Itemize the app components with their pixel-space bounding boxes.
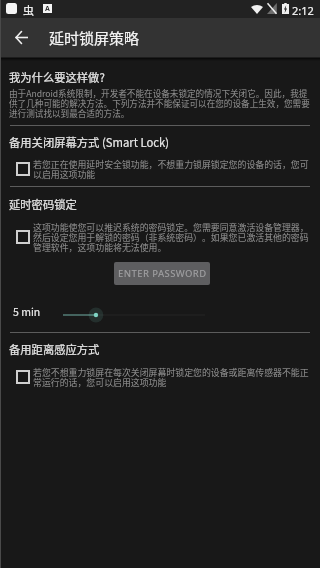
staticText: 2:12 [292, 3, 314, 18]
staticText: 若您正在使用延时安全锁功能，不想重力锁屏锁定您的设备的话，您可以启用这项功能 [33, 158, 312, 180]
button[interactable]: 若您正在使用延时安全锁功能，不想重力锁屏锁定您的设备的话，您可以启用这项功能 [0, 158, 320, 180]
staticText: 延时密码锁定 [9, 196, 77, 212]
staticText: 5 min [13, 304, 41, 319]
button[interactable]: ENTER PASSWORD [114, 262, 210, 285]
staticText: 我为什么要这样做? [9, 69, 105, 85]
staticText: 备用距离感应方式 [9, 341, 100, 357]
button[interactable]: 若您不想重力锁屏在每次关闭屏幕时锁定您的设备或距离传感器不能正常运行的话，您可以… [0, 366, 320, 388]
staticText: 备用关闭屏幕方式 (Smart Lock) [9, 134, 170, 150]
staticText: A [45, 4, 50, 13]
staticText: 延时锁屏策略 [49, 27, 140, 49]
button[interactable]: Back [7, 18, 35, 57]
button[interactable]: 这项功能使您可以推迟系统的密码锁定。您需要同意激活设备管理器，然后设定您用于解锁… [0, 221, 320, 253]
staticText: 由于Android系统限制，开发者不能在设备未锁定的情况下关闭它。因此，我提供了… [9, 87, 312, 119]
staticText: 虫 [23, 2, 34, 18]
staticText: ENTER PASSWORD [118, 267, 207, 280]
staticText: 若您不想重力锁屏在每次关闭屏幕时锁定您的设备或距离传感器不能正常运行的话，您可以… [33, 366, 312, 388]
staticText: 这项功能使您可以推迟系统的密码锁定。您需要同意激活设备管理器，然后设定您用于解锁… [33, 221, 312, 253]
